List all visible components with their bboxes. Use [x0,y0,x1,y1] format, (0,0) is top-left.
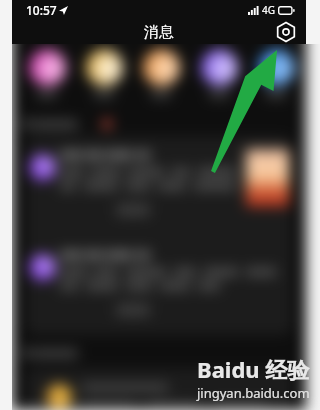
staticText: 4G [262,3,275,17]
button[interactable] [116,204,150,216]
button[interactable] [143,49,180,86]
button[interactable] [86,49,123,86]
staticText: 消息 [144,23,174,42]
button[interactable] [26,236,292,335]
button[interactable] [116,304,150,316]
button[interactable] [201,49,238,86]
button[interactable] [24,346,144,360]
button[interactable] [258,49,295,86]
button[interactable] [26,136,292,236]
staticText: Baidu 经验 [197,354,310,384]
button[interactable] [29,49,66,86]
staticText: 10:57 [26,2,57,18]
staticText: jingyan.baidu.com [197,384,310,402]
button[interactable]: Settings [274,20,298,44]
button[interactable] [24,117,144,131]
